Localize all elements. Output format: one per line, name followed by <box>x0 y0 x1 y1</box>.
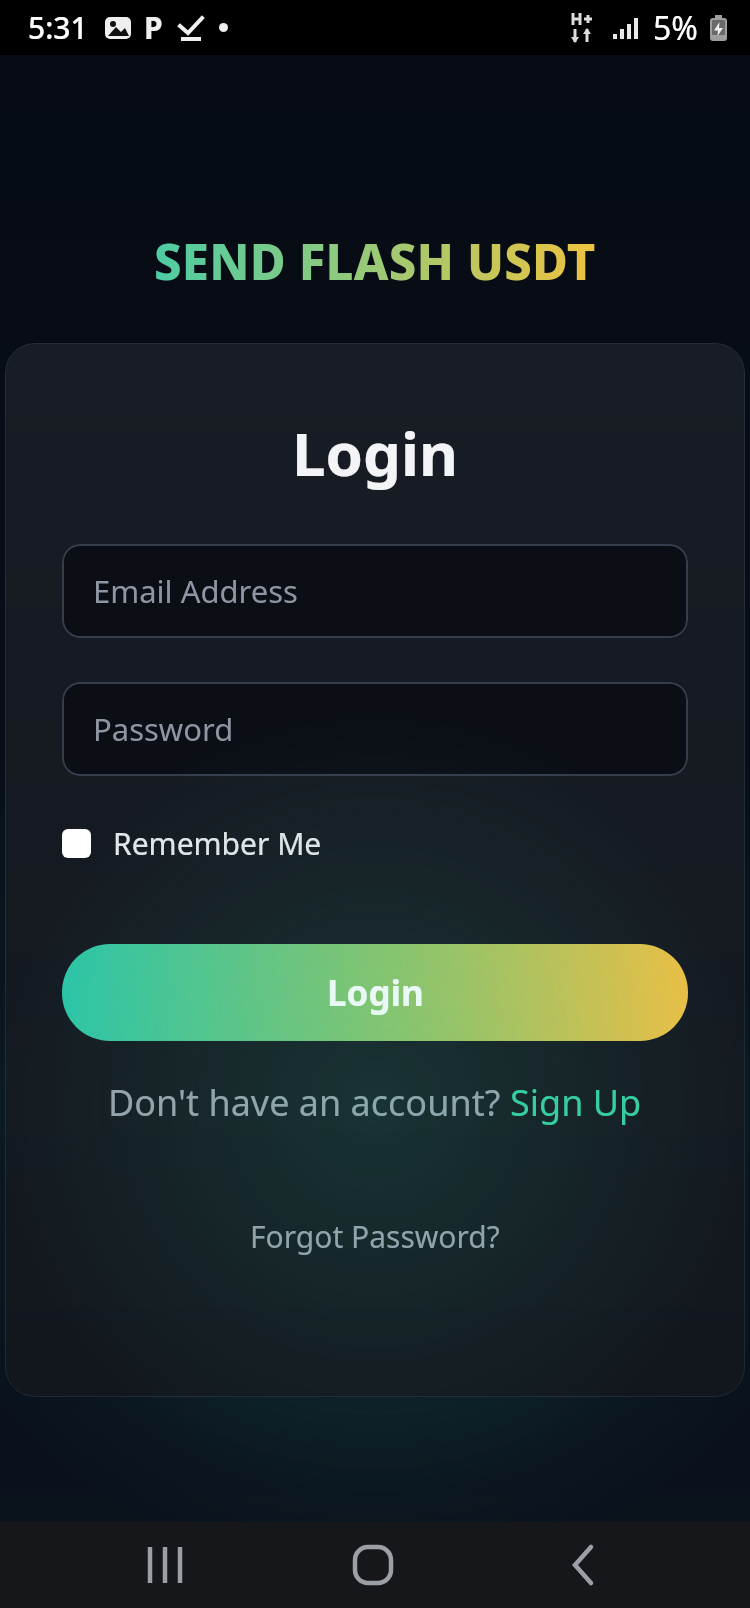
button[interactable]: Password <box>62 682 688 776</box>
staticText: Login <box>327 969 424 1017</box>
staticText: Remember Me <box>113 823 322 864</box>
staticText: Login <box>292 412 458 494</box>
staticText: P <box>144 7 163 48</box>
button[interactable] <box>341 1522 405 1608</box>
staticText: SEND FLASH USDT <box>154 228 596 295</box>
staticText: Email Address <box>93 570 298 612</box>
button[interactable]: Email Address <box>62 544 688 638</box>
button[interactable] <box>553 1522 617 1608</box>
button[interactable]: Forgot Password? <box>250 1216 500 1257</box>
staticText: 5% <box>653 6 698 50</box>
staticText: Don't have an account? <box>108 1078 510 1127</box>
staticText: Sign Up <box>510 1078 642 1127</box>
staticText: Password <box>93 708 234 750</box>
staticText: Forgot Password? <box>250 1216 500 1257</box>
button[interactable]: Don't have an account? <box>108 1078 642 1127</box>
button[interactable]: Login <box>62 944 688 1041</box>
staticText: 5:31 <box>28 7 88 48</box>
button[interactable] <box>133 1522 197 1608</box>
button[interactable]: Remember Me <box>62 823 322 864</box>
